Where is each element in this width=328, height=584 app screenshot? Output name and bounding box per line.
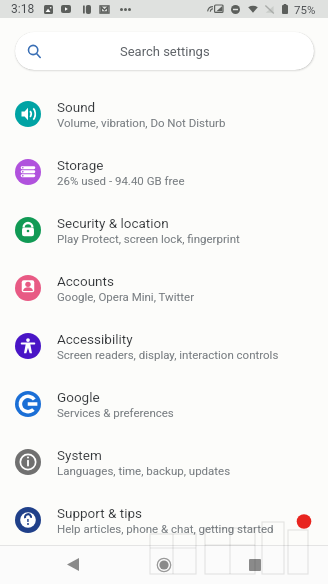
button[interactable]: Accessibility (0, 317, 328, 375)
staticText: Support & tips (57, 505, 142, 521)
button[interactable]: Recents (230, 545, 280, 584)
button[interactable]: Storage (0, 143, 328, 201)
staticText: 3:18 (11, 2, 35, 16)
staticText: 75% (294, 3, 316, 16)
staticText: Sound (57, 99, 96, 115)
staticText: Search settings (120, 44, 210, 59)
button[interactable]: Accounts (0, 259, 328, 317)
staticText: 26% used - 94.40 GB free (57, 174, 185, 187)
button[interactable]: Home (139, 545, 189, 584)
staticText: Help articles, phone & chat, getting sta… (57, 522, 274, 535)
button[interactable]: Security & location (0, 201, 328, 259)
button[interactable]: Search settings (15, 32, 314, 70)
button[interactable]: Google (0, 375, 328, 433)
button[interactable]: Support & tips (0, 491, 328, 549)
button[interactable]: System (0, 433, 328, 491)
staticText: Storage (57, 157, 104, 173)
staticText: System (57, 447, 102, 463)
staticText: Accessibility (57, 331, 133, 347)
staticText: Google, Opera Mini, Twitter (57, 290, 195, 303)
staticText: Security & location (57, 215, 169, 231)
staticText: Google (57, 389, 100, 405)
button[interactable]: Back (48, 545, 98, 584)
staticText: Volume, vibration, Do Not Disturb (57, 116, 226, 129)
staticText: Accounts (57, 273, 114, 289)
staticText: Languages, time, backup, updates (57, 464, 231, 477)
staticText: Screen readers, display, interaction con… (57, 348, 279, 361)
staticText: Play Protect, screen lock, fingerprint (57, 232, 240, 245)
staticText: Services & preferences (57, 406, 174, 419)
button[interactable]: Sound (0, 85, 328, 143)
